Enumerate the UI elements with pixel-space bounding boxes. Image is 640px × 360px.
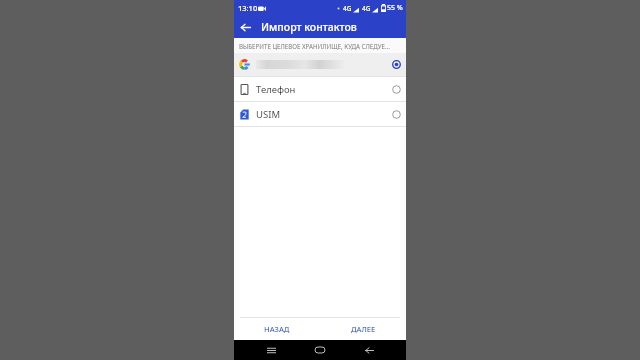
staticText: 4G <box>343 4 352 13</box>
staticText: НАЗАД <box>264 324 290 334</box>
button[interactable] <box>234 53 406 76</box>
staticText: Телефон <box>256 83 296 96</box>
staticText: USIM <box>256 108 280 121</box>
staticText: 55 % <box>387 3 403 13</box>
button[interactable]: ДАЛЕЕ <box>320 318 406 340</box>
button[interactable]: НАЗАД <box>234 318 320 340</box>
button[interactable]: Back <box>234 16 256 38</box>
button[interactable]: Back <box>357 340 381 360</box>
button[interactable]: Recent apps <box>259 340 283 360</box>
staticText: 4G <box>362 4 371 13</box>
button[interactable]: USIM <box>234 102 406 126</box>
staticText: ВЫБЕРИТЕ ЦЕЛЕВОЕ ХРАНИЛИЩЕ, КУДА СЛЕДУЕ… <box>239 42 390 50</box>
staticText: 13:10 <box>238 3 258 13</box>
button[interactable]: Home <box>308 340 332 360</box>
staticText: Импорт контактов <box>261 20 357 34</box>
button[interactable]: Телефон <box>234 77 406 101</box>
staticText: ДАЛЕЕ <box>351 324 376 334</box>
